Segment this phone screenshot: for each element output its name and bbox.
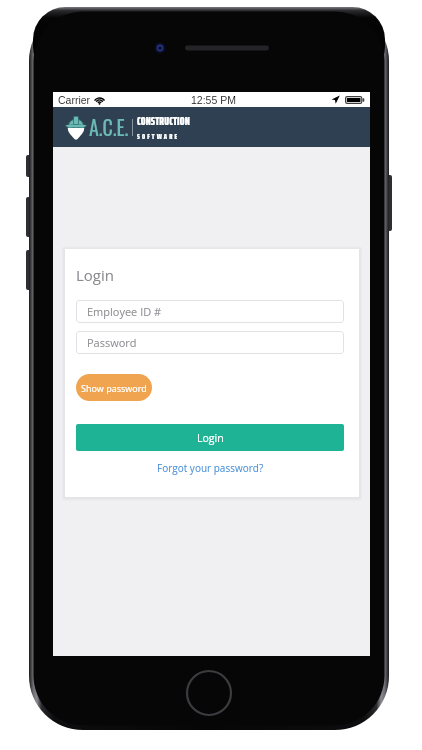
- staticText: A.C.E.: [89, 112, 129, 142]
- button[interactable]: Login: [76, 424, 344, 451]
- staticText: SOFTWARE: [137, 130, 180, 142]
- button[interactable]: Show password: [76, 374, 152, 401]
- staticText: Password: [87, 335, 137, 350]
- staticText: CONSTRUCTION: [137, 112, 190, 130]
- staticText: Show password: [81, 382, 147, 394]
- staticText: 12:55 PM: [191, 94, 236, 106]
- button[interactable]: Password: [76, 331, 344, 354]
- staticText: Carrier: [58, 94, 91, 106]
- staticText: Forgot your password?: [157, 461, 264, 475]
- staticText: Employee ID #: [87, 304, 162, 319]
- button[interactable]: Forgot your password?: [76, 460, 344, 476]
- button[interactable]: Employee ID #: [76, 300, 344, 323]
- staticText: Login: [76, 265, 114, 285]
- staticText: Login: [197, 431, 224, 445]
